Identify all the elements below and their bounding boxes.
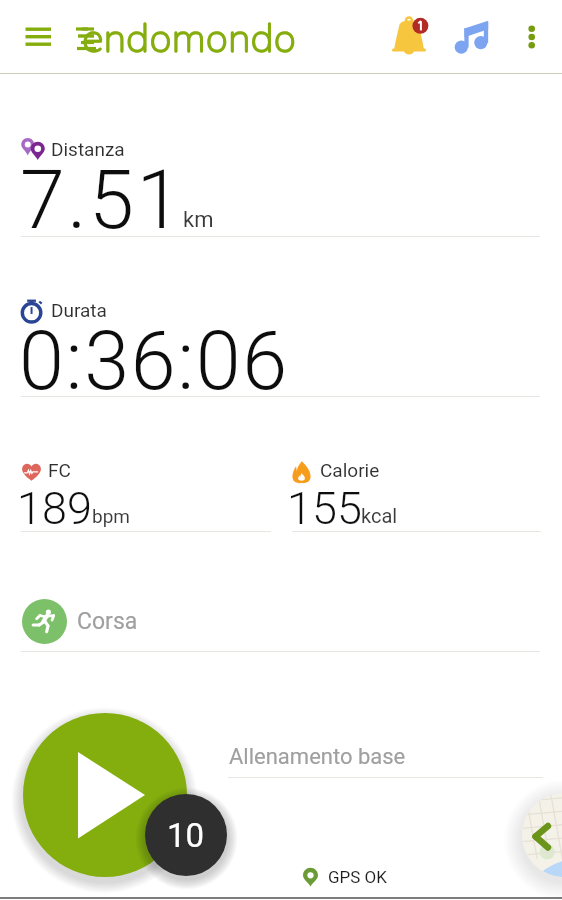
button[interactable]: Notifications <box>380 6 440 66</box>
staticText: Distanza <box>51 138 125 160</box>
button[interactable]: Corsa <box>21 596 540 656</box>
button[interactable]: GPS OK <box>302 862 387 892</box>
staticText: Durata <box>51 299 107 321</box>
staticText: 10 <box>167 816 205 855</box>
staticText: Corsa <box>77 608 138 635</box>
staticText: 0:36:06 <box>19 314 289 409</box>
staticText: 7.51 <box>20 153 184 248</box>
staticText: km <box>183 207 214 233</box>
button[interactable]: More options <box>508 10 556 58</box>
button[interactable]: Music <box>448 8 504 64</box>
button[interactable]: Map <box>522 793 562 877</box>
button[interactable]: Start workout <box>23 713 187 877</box>
staticText: GPS OK <box>328 867 387 887</box>
button[interactable]: Allenamento base <box>229 744 406 770</box>
staticText: Calorie <box>320 459 380 481</box>
staticText: kcal <box>361 504 398 527</box>
button[interactable]: Countdown 10 seconds <box>145 794 227 876</box>
staticText: FC <box>48 459 71 481</box>
button[interactable]: Menu <box>2 10 54 62</box>
staticText: 155 <box>287 482 362 535</box>
button[interactable]: endomondo <box>82 11 296 67</box>
staticText: 189 <box>17 482 92 535</box>
staticText: bpm <box>92 505 130 527</box>
